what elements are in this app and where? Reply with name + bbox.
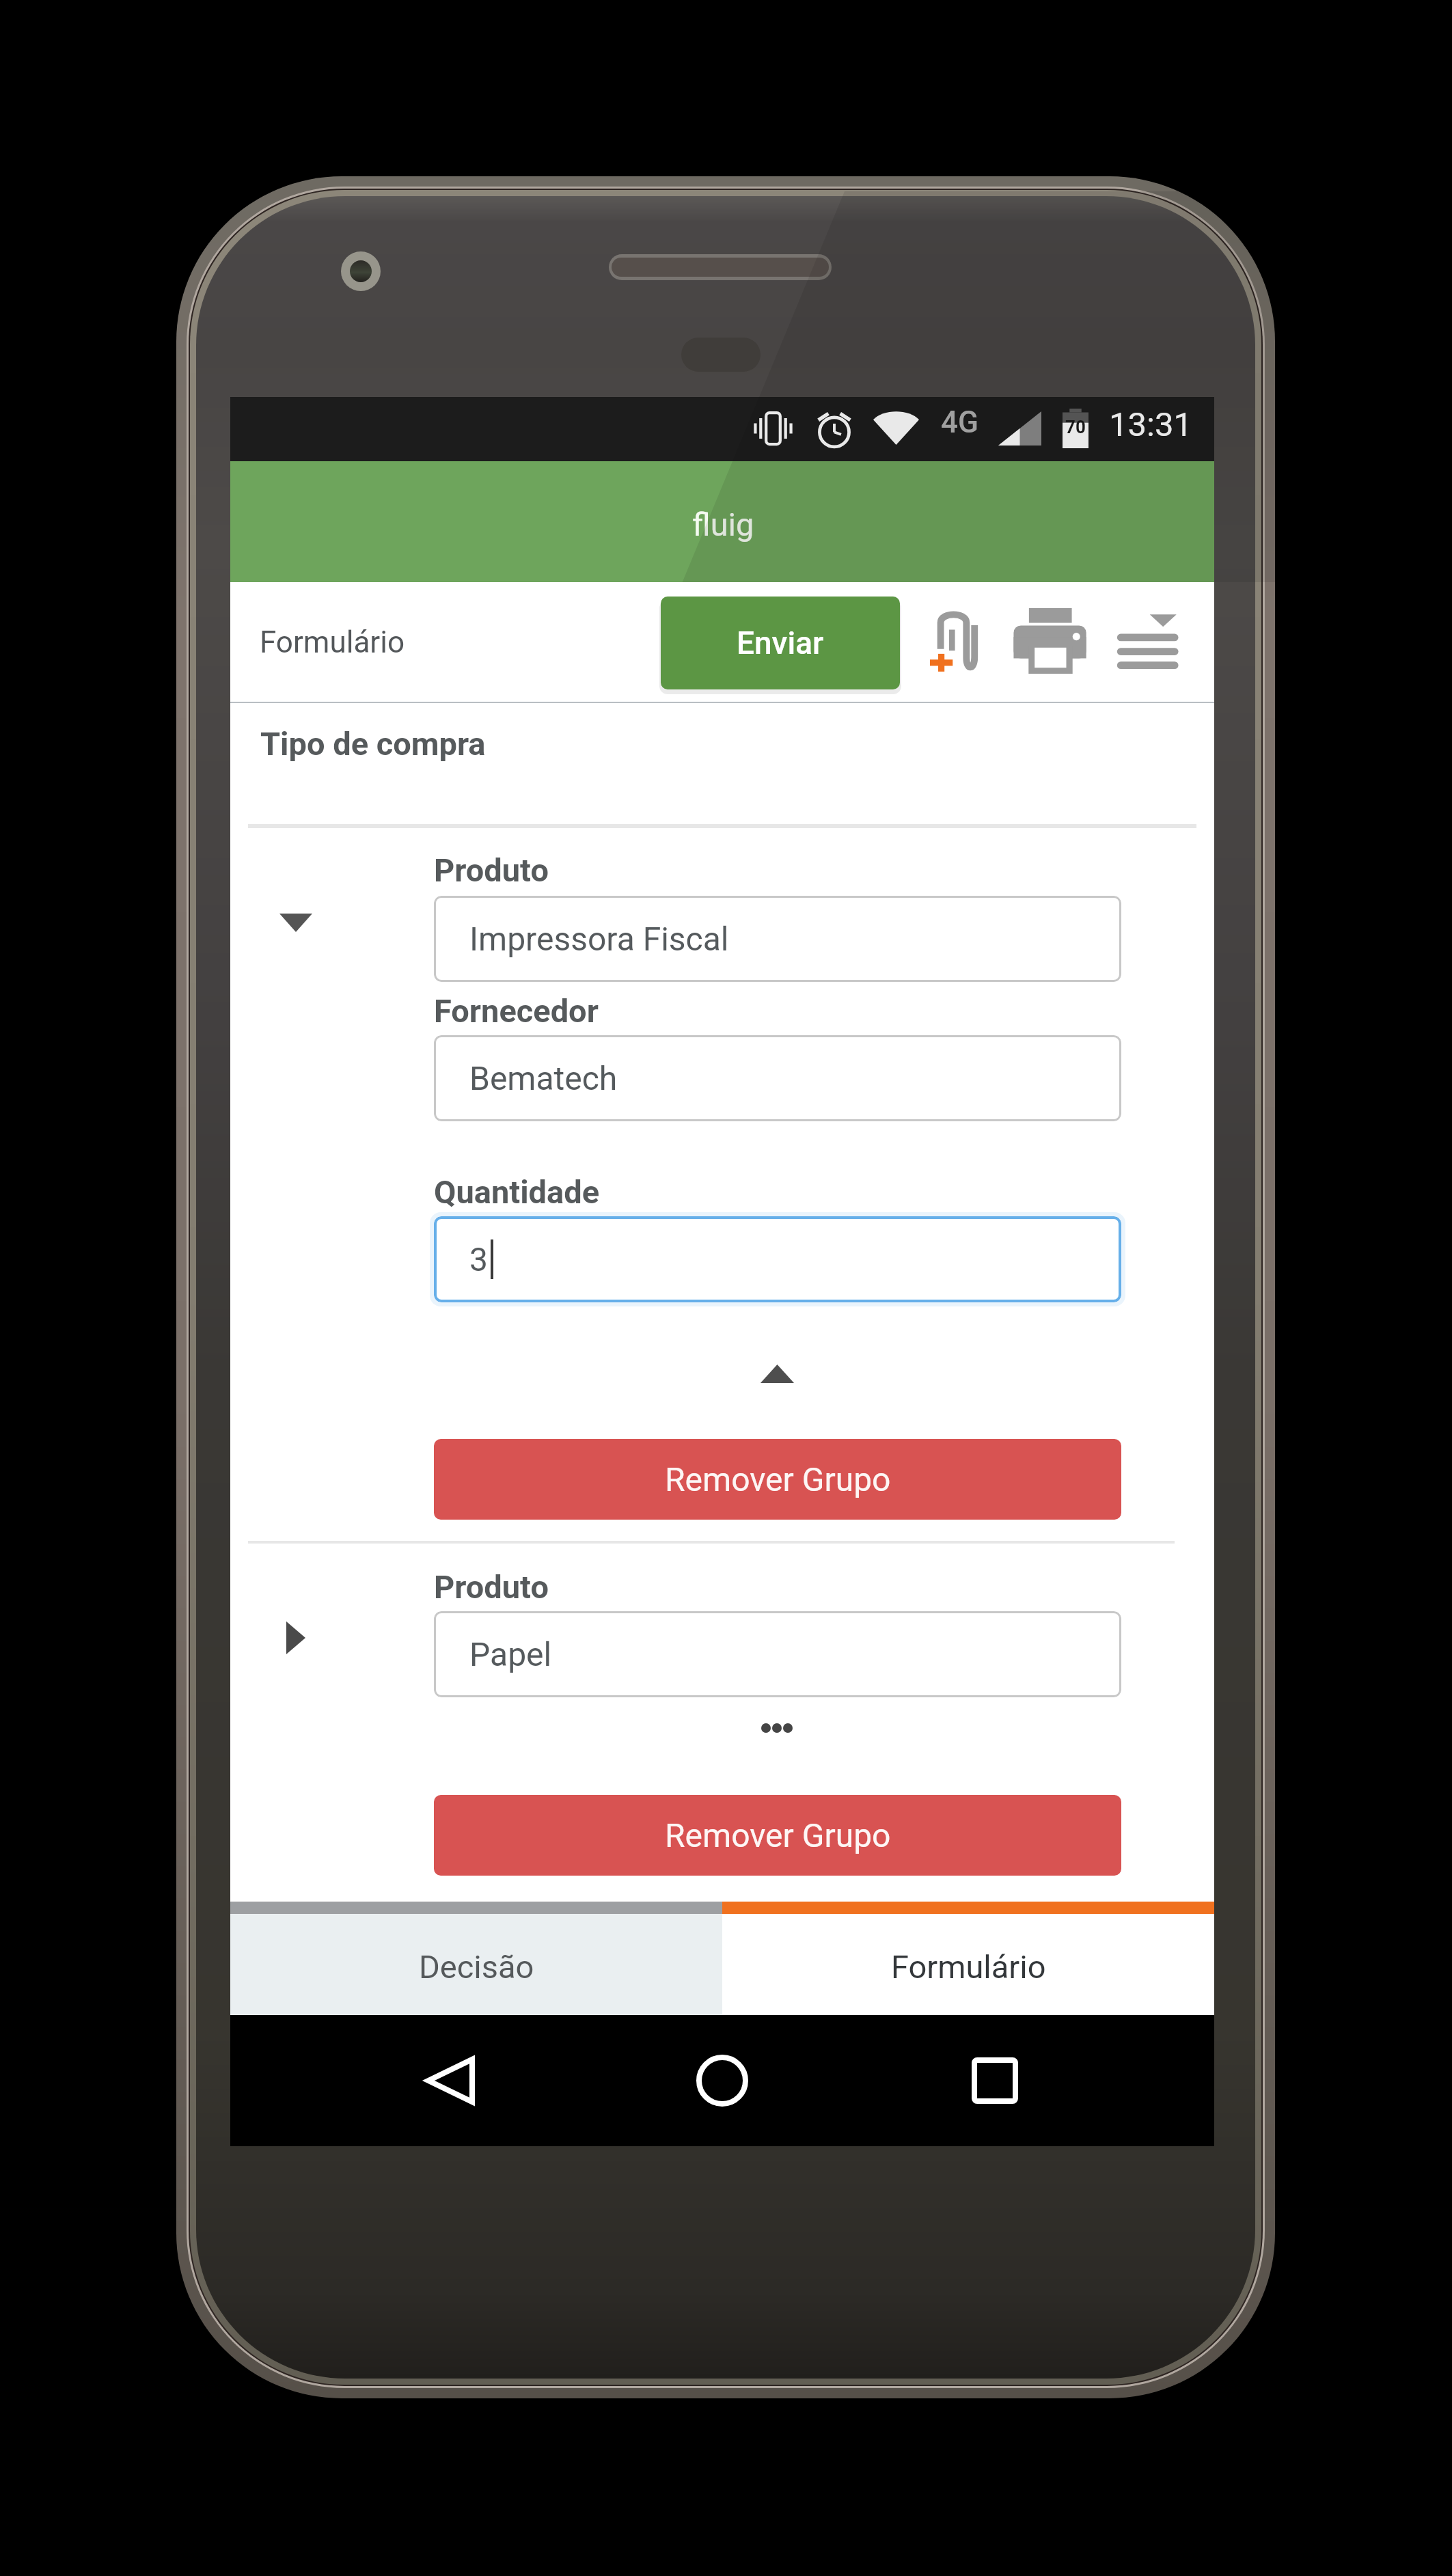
staticText: Papel — [469, 1635, 552, 1673]
button[interactable]: Expand group — [255, 1602, 337, 1674]
button[interactable]: Bematech — [434, 1035, 1121, 1121]
button[interactable]: Recents — [913, 2015, 1077, 2146]
staticText: 13:31 — [1109, 405, 1193, 444]
staticText: Impressora Fiscal — [469, 920, 729, 958]
button[interactable]: Remover Grupo — [434, 1795, 1121, 1876]
button[interactable]: More — [736, 1699, 818, 1757]
staticText: Fornecedor — [434, 992, 599, 1030]
button[interactable]: Enviar — [661, 597, 900, 689]
button[interactable]: Home — [640, 2015, 804, 2146]
button[interactable]: Impressora Fiscal — [434, 896, 1121, 982]
staticText: Tipo de compra — [260, 725, 486, 763]
staticText: 70 — [1065, 417, 1086, 437]
button[interactable]: Papel — [434, 1611, 1121, 1697]
button[interactable]: Attach file — [911, 596, 997, 689]
button[interactable]: Sort options — [1102, 596, 1192, 689]
button[interactable]: Remover Grupo — [434, 1439, 1121, 1520]
button[interactable]: Collapse — [736, 1341, 818, 1406]
staticText: Decisão — [419, 1948, 534, 1986]
button[interactable]: Collapse group — [255, 886, 337, 959]
staticText: Produto — [434, 1568, 549, 1606]
button[interactable]: 3 — [434, 1216, 1121, 1302]
button[interactable]: Decisão — [230, 1914, 722, 2015]
staticText: 4G — [941, 405, 978, 440]
button[interactable]: Back — [368, 2015, 532, 2146]
staticText: 3 — [469, 1240, 488, 1278]
staticText: Bematech — [469, 1059, 618, 1097]
staticText: Produto — [434, 851, 549, 889]
staticText: Remover Grupo — [665, 1460, 891, 1498]
button[interactable]: Formulário — [722, 1914, 1214, 2015]
staticText: Formulário — [260, 625, 405, 660]
staticText: Quantidade — [434, 1173, 600, 1211]
staticText: Enviar — [737, 625, 824, 661]
staticText: Remover Grupo — [665, 1816, 891, 1854]
button[interactable]: Print — [1002, 596, 1099, 689]
staticText: Formulário — [891, 1948, 1046, 1986]
staticText: fluig — [692, 506, 754, 543]
